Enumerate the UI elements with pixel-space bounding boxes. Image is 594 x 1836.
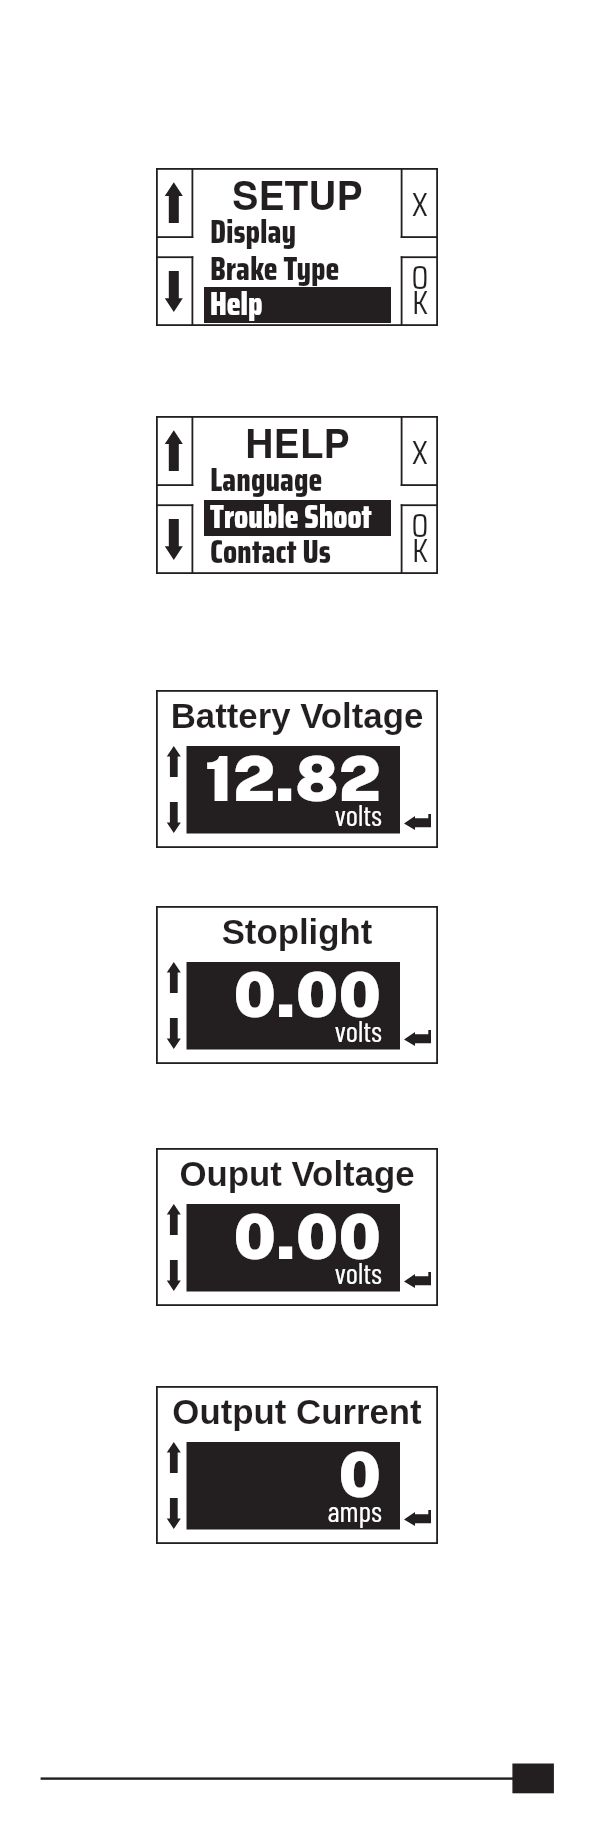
staticText: SETUP (192, 166, 403, 226)
button[interactable]: Display (204, 215, 391, 251)
button[interactable]: Scroll down (156, 256, 192, 326)
staticText: volts (187, 1255, 382, 1291)
staticText: O (402, 500, 438, 552)
button[interactable]: Scroll up (166, 962, 184, 994)
staticText: Contact Us (210, 526, 400, 578)
staticText: Display (210, 206, 400, 258)
staticText: 0.00 (187, 957, 381, 1035)
button[interactable]: Contact Us (204, 535, 391, 571)
staticText: Ouput Voltage (156, 1154, 438, 1200)
button[interactable]: Scroll up (166, 1204, 184, 1236)
staticText: HELP (192, 414, 403, 474)
button[interactable]: X (402, 416, 438, 486)
staticText: Language (210, 454, 400, 506)
staticText: K (402, 525, 438, 577)
button[interactable]: Scroll up (156, 416, 192, 486)
button[interactable]: Scroll up (156, 168, 192, 238)
button[interactable]: Trouble Shoot (204, 500, 391, 536)
staticText: O (402, 252, 438, 304)
staticText: volts (187, 797, 382, 833)
button[interactable]: Scroll down (166, 802, 184, 834)
button[interactable]: Scroll up (166, 1442, 184, 1474)
staticText: 0 (187, 1437, 381, 1515)
button[interactable]: O (402, 504, 438, 574)
button[interactable]: Help (204, 287, 391, 323)
button[interactable]: Scroll down (156, 504, 192, 574)
button[interactable]: O (402, 256, 438, 326)
button[interactable]: Scroll down (166, 1260, 184, 1292)
staticText: volts (187, 1013, 382, 1049)
staticText: X (412, 427, 428, 478)
button[interactable]: X (402, 168, 438, 238)
staticText: Battery Voltage (156, 696, 438, 742)
staticText: Help (210, 278, 400, 330)
button[interactable]: Brake Type (204, 252, 391, 288)
staticText: Trouble Shoot (210, 491, 400, 543)
staticText: X (412, 179, 428, 230)
staticText: 0.00 (187, 1199, 381, 1277)
button[interactable]: Enter (404, 1030, 431, 1046)
button[interactable]: Scroll down (166, 1498, 184, 1530)
staticText: Output Current (156, 1392, 438, 1438)
staticText: 12.82 (187, 741, 381, 819)
staticText: Brake Type (210, 243, 400, 295)
staticText: amps (187, 1493, 382, 1529)
button[interactable]: Language (204, 463, 391, 499)
button[interactable]: Scroll up (166, 746, 184, 778)
staticText: Stoplight (156, 912, 438, 958)
button[interactable]: Enter (404, 1272, 431, 1288)
staticText: K (402, 277, 438, 329)
button[interactable]: Scroll down (166, 1018, 184, 1050)
button[interactable]: Enter (404, 814, 431, 830)
button[interactable]: Enter (404, 1510, 431, 1526)
